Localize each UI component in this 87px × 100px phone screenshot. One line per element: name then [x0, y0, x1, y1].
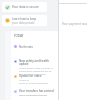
other: Link	[14, 90, 17, 93]
staticText: Lorem ip	[19, 78, 29, 81]
staticText: dolor sit amet consectetur	[19, 81, 49, 84]
other: Security status	[5, 5, 10, 10]
staticText: Your payment was made	[62, 22, 87, 26]
button[interactable]: Calendar	[14, 45, 58, 49]
staticText: your data private	[12, 21, 35, 25]
staticText: Your transfers has arrived	[19, 89, 54, 93]
staticText: TODAY	[14, 34, 24, 38]
button[interactable]: Link	[14, 90, 58, 97]
staticText: Your data is secure	[12, 5, 39, 9]
staticText: No threats	[19, 45, 33, 49]
button[interactable]: Security status	[2, 2, 47, 12]
other: Reminder	[14, 75, 17, 78]
staticText: Update for video	[19, 74, 42, 78]
staticText: Learn how to keep	[12, 17, 37, 21]
other: Tips	[5, 18, 10, 23]
other: Message	[14, 60, 17, 63]
staticText: New safety and health update	[19, 59, 58, 66]
button[interactable]: Message	[14, 60, 58, 76]
staticText: Lorem ipsum dolor sit amet ut	[19, 66, 53, 69]
button[interactable]: Tips	[2, 15, 47, 26]
staticText: sed do eiusmod tempor	[19, 72, 46, 75]
other: Calendar	[14, 45, 17, 48]
button[interactable]: Reminder	[14, 75, 58, 85]
staticText: https://example.com/link	[19, 93, 48, 96]
staticText: consectetur adipiscing elit se	[19, 69, 52, 72]
